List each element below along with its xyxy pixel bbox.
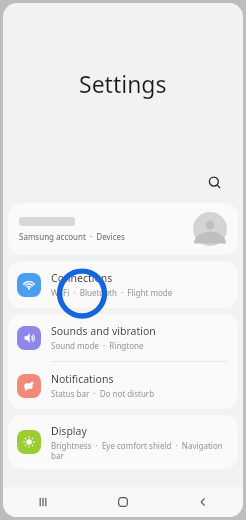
staticText: Sound mode · Ringtone: [51, 340, 144, 351]
button[interactable]: Search: [201, 169, 229, 197]
staticText: Brightness · Eye comfort shield · Naviga…: [51, 440, 227, 461]
staticText: Status bar · Do not disturb: [51, 388, 155, 399]
button[interactable]: Display: [8, 415, 238, 469]
button[interactable]: Recents: [3, 487, 83, 517]
button[interactable]: Sounds and vibration: [8, 314, 238, 361]
staticText: Notifications: [51, 372, 114, 386]
button[interactable]: Back: [163, 487, 243, 517]
staticText: Samsung account · Devices: [19, 231, 125, 242]
staticText: Wi-Fi · Bluetooth · Flight mode: [51, 287, 173, 298]
staticText: Display: [51, 424, 87, 438]
button[interactable]: Samsung account · Devices: [8, 203, 238, 255]
staticText: Sounds and vibration: [51, 324, 156, 338]
button[interactable]: Notifications: [8, 362, 238, 409]
button[interactable]: Connections: [8, 261, 238, 308]
staticText: Connections: [51, 271, 113, 285]
button[interactable]: Home: [83, 487, 163, 517]
staticText: Settings: [79, 68, 167, 99]
